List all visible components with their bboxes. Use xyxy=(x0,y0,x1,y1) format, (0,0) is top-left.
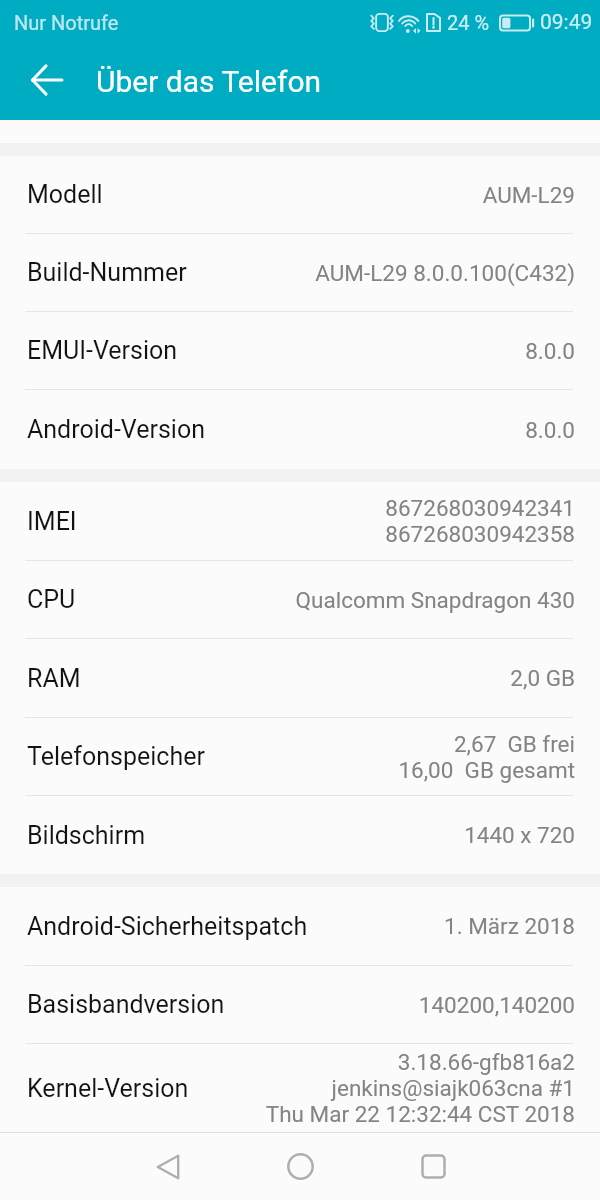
staticText: Über das Telefon xyxy=(96,64,322,99)
staticText: 8.0.0 xyxy=(525,338,575,364)
staticText: Build-Nummer xyxy=(27,258,187,287)
button[interactable]: Modell xyxy=(0,156,600,233)
button[interactable]: IMEI xyxy=(0,482,600,560)
staticText: Basisbandversion xyxy=(27,990,225,1019)
staticText: 3.18.66-gfb816a2 xyxy=(397,1049,575,1075)
button[interactable]: Bildschirm xyxy=(0,796,600,874)
staticText: Kernel-Version xyxy=(27,1074,189,1103)
button[interactable]: Back xyxy=(101,1133,234,1200)
staticText: 1440 x 720 xyxy=(464,822,575,848)
staticText: 24 % xyxy=(447,11,490,34)
staticText: Thu Mar 22 12:32:44 CST 2018 xyxy=(265,1101,575,1127)
staticText: Bildschirm xyxy=(27,821,146,850)
staticText: 1. März 2018 xyxy=(444,913,575,939)
staticText: 2,0 GB xyxy=(510,665,575,691)
button[interactable]: Android-Sicherheitspatch xyxy=(0,887,600,965)
button[interactable]: Basisbandversion xyxy=(0,966,600,1043)
staticText: RAM xyxy=(27,664,81,693)
staticText: CPU xyxy=(27,585,76,614)
staticText: jenkins@siajk063cna #1 xyxy=(331,1075,575,1101)
staticText: 16,00 GB gesamt xyxy=(398,757,575,783)
staticText: 8.0.0 xyxy=(525,417,575,443)
button[interactable]: RAM xyxy=(0,639,600,717)
staticText: AUM-L29 xyxy=(482,182,575,208)
button[interactable]: Telefonspeicher xyxy=(0,718,600,795)
button[interactable]: Android-Version xyxy=(0,390,600,469)
button[interactable]: EMUI-Version xyxy=(0,312,600,389)
staticText: EMUI-Version xyxy=(27,336,178,365)
staticText: Android-Sicherheitspatch xyxy=(27,912,308,941)
staticText: Qualcomm Snapdragon 430 xyxy=(295,587,575,613)
staticText: 140200,140200 xyxy=(418,992,575,1018)
staticText: 867268030942358 xyxy=(385,521,575,547)
staticText: Telefonspeicher xyxy=(27,742,205,771)
staticText: Modell xyxy=(27,180,103,209)
staticText: 867268030942341 xyxy=(385,495,575,521)
button[interactable]: Back xyxy=(0,45,93,120)
button[interactable]: Kernel-Version xyxy=(0,1044,600,1132)
button[interactable]: Recent apps xyxy=(367,1133,500,1200)
staticText: Nur Notrufe xyxy=(14,11,119,34)
button[interactable]: CPU xyxy=(0,561,600,638)
button[interactable]: Home xyxy=(234,1133,367,1200)
staticText: Android-Version xyxy=(27,415,205,444)
staticText: 2,67 GB frei xyxy=(453,731,575,757)
staticText: AUM-L29 8.0.0.100(C432) xyxy=(315,260,575,286)
staticText: IMEI xyxy=(27,507,77,536)
staticText: 09:49 xyxy=(540,10,593,35)
button[interactable]: Build-Nummer xyxy=(0,234,600,311)
